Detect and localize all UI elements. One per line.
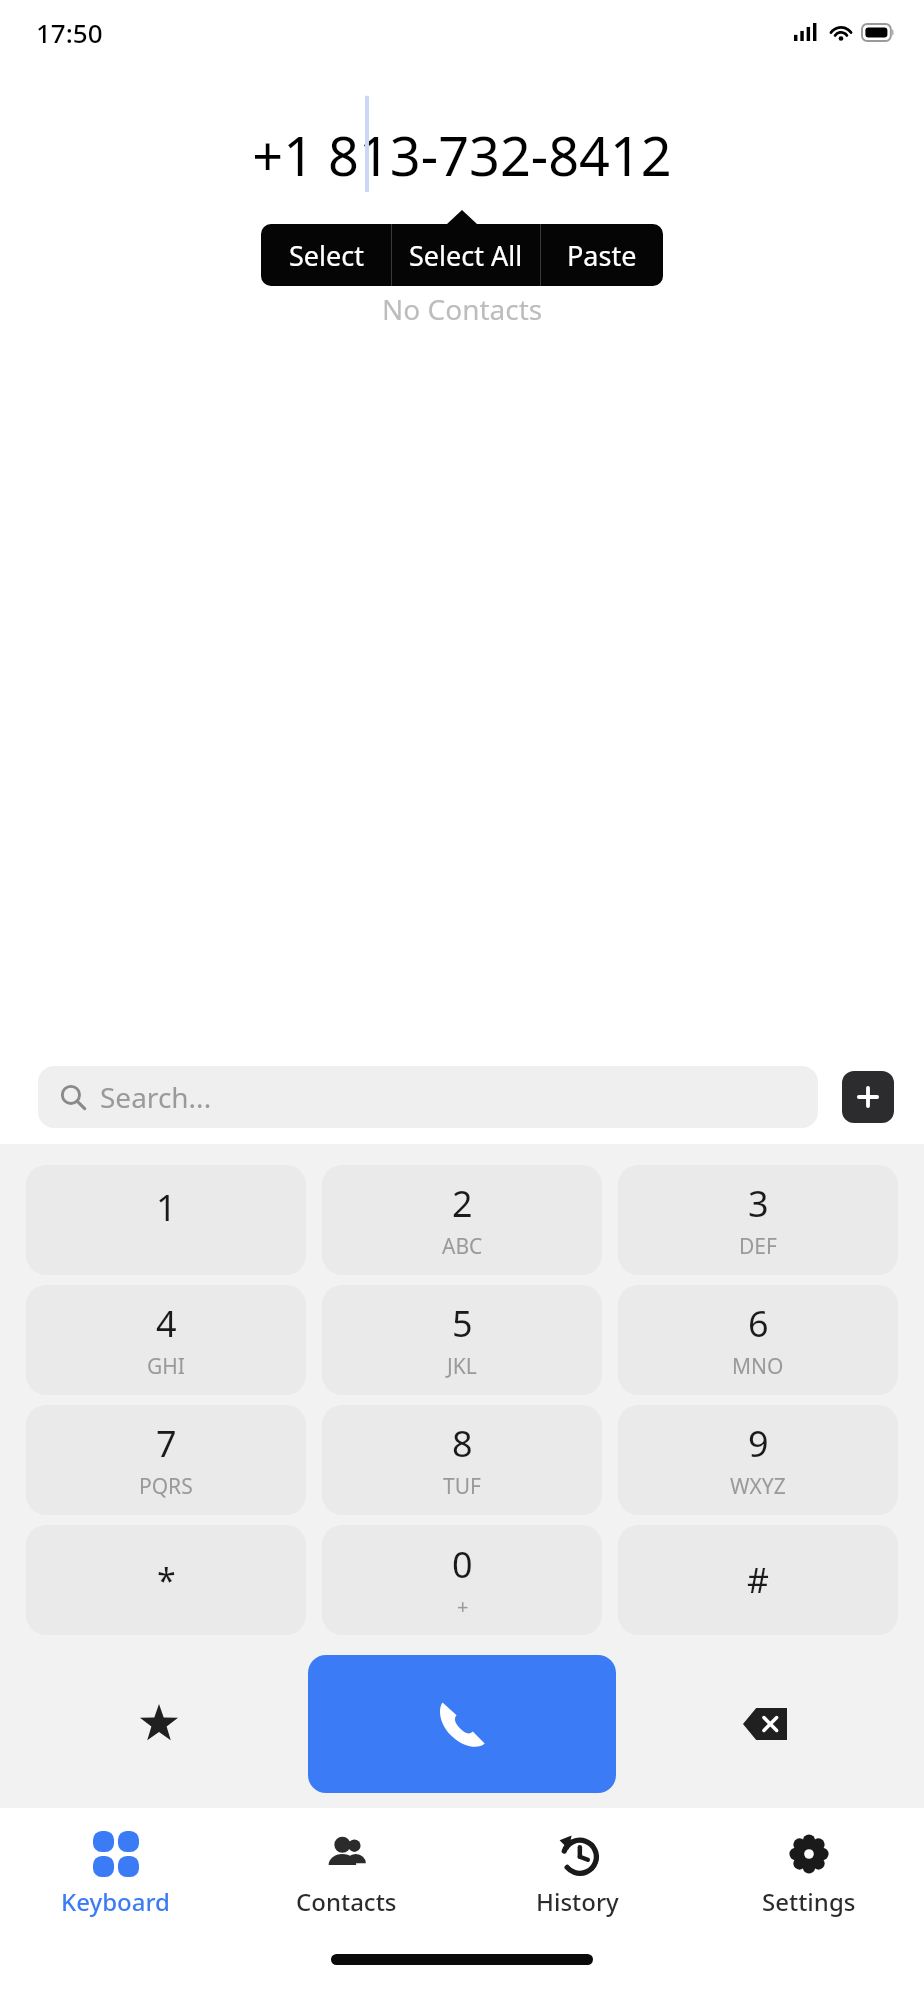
button[interactable]: Call [308,1655,616,1793]
button[interactable]: 8 [322,1405,602,1515]
staticText: DEF [739,1232,777,1261]
staticText: * [157,1557,176,1603]
staticText: Contacts [296,1885,397,1918]
button[interactable]: 3 [618,1165,898,1275]
staticText: History [536,1885,619,1918]
staticText: JKL [447,1352,477,1381]
staticText: +1 813-732-8412 [252,118,672,192]
staticText: # [747,1557,769,1603]
staticText: 7 [156,1419,177,1468]
staticText: + [457,1593,469,1620]
staticText: 3 [748,1179,769,1228]
button[interactable]: Select [261,224,391,286]
staticText: 5 [452,1299,473,1348]
staticText: 0 [452,1540,473,1589]
button[interactable]: Favorites [18,1654,300,1794]
staticText: TUF [443,1472,481,1501]
button[interactable]: 4 [26,1285,306,1395]
button[interactable]: Add contact [842,1071,894,1123]
button[interactable]: Delete [624,1654,906,1794]
staticText: ABC [442,1232,483,1261]
staticText: 1 [156,1183,177,1232]
button[interactable]: Contacts [231,1808,462,1940]
button[interactable]: 1 [26,1165,306,1275]
button[interactable]: Select All [392,224,540,286]
button[interactable]: * [26,1525,306,1635]
button[interactable]: Paste [541,224,663,286]
button[interactable]: 9 [618,1405,898,1515]
staticText: 17:50 [36,15,103,50]
staticText: GHI [147,1352,185,1381]
button[interactable]: 2 [322,1165,602,1275]
staticText: Search... [100,1078,212,1116]
button[interactable]: Search... [38,1066,818,1128]
staticText: Keyboard [61,1885,170,1918]
button[interactable]: 6 [618,1285,898,1395]
staticText: 4 [156,1299,177,1348]
staticText: PQRS [139,1472,193,1501]
staticText: 2 [452,1179,473,1228]
button[interactable]: Keyboard [0,1808,231,1940]
staticText: Select All [409,237,523,274]
staticText: Settings [762,1885,856,1918]
staticText: 8 [452,1419,473,1468]
button[interactable]: 7 [26,1405,306,1515]
button[interactable]: # [618,1525,898,1635]
button[interactable]: 5 [322,1285,602,1395]
staticText: No Contacts [382,290,543,328]
staticText: WXYZ [730,1472,786,1501]
staticText: MNO [732,1352,784,1381]
staticText: 6 [748,1299,769,1348]
button[interactable]: 0 [322,1525,602,1635]
staticText: 9 [748,1419,769,1468]
button[interactable]: History [462,1808,693,1940]
button[interactable]: Settings [693,1808,924,1940]
staticText: Select [289,237,364,274]
staticText: Paste [567,237,637,274]
